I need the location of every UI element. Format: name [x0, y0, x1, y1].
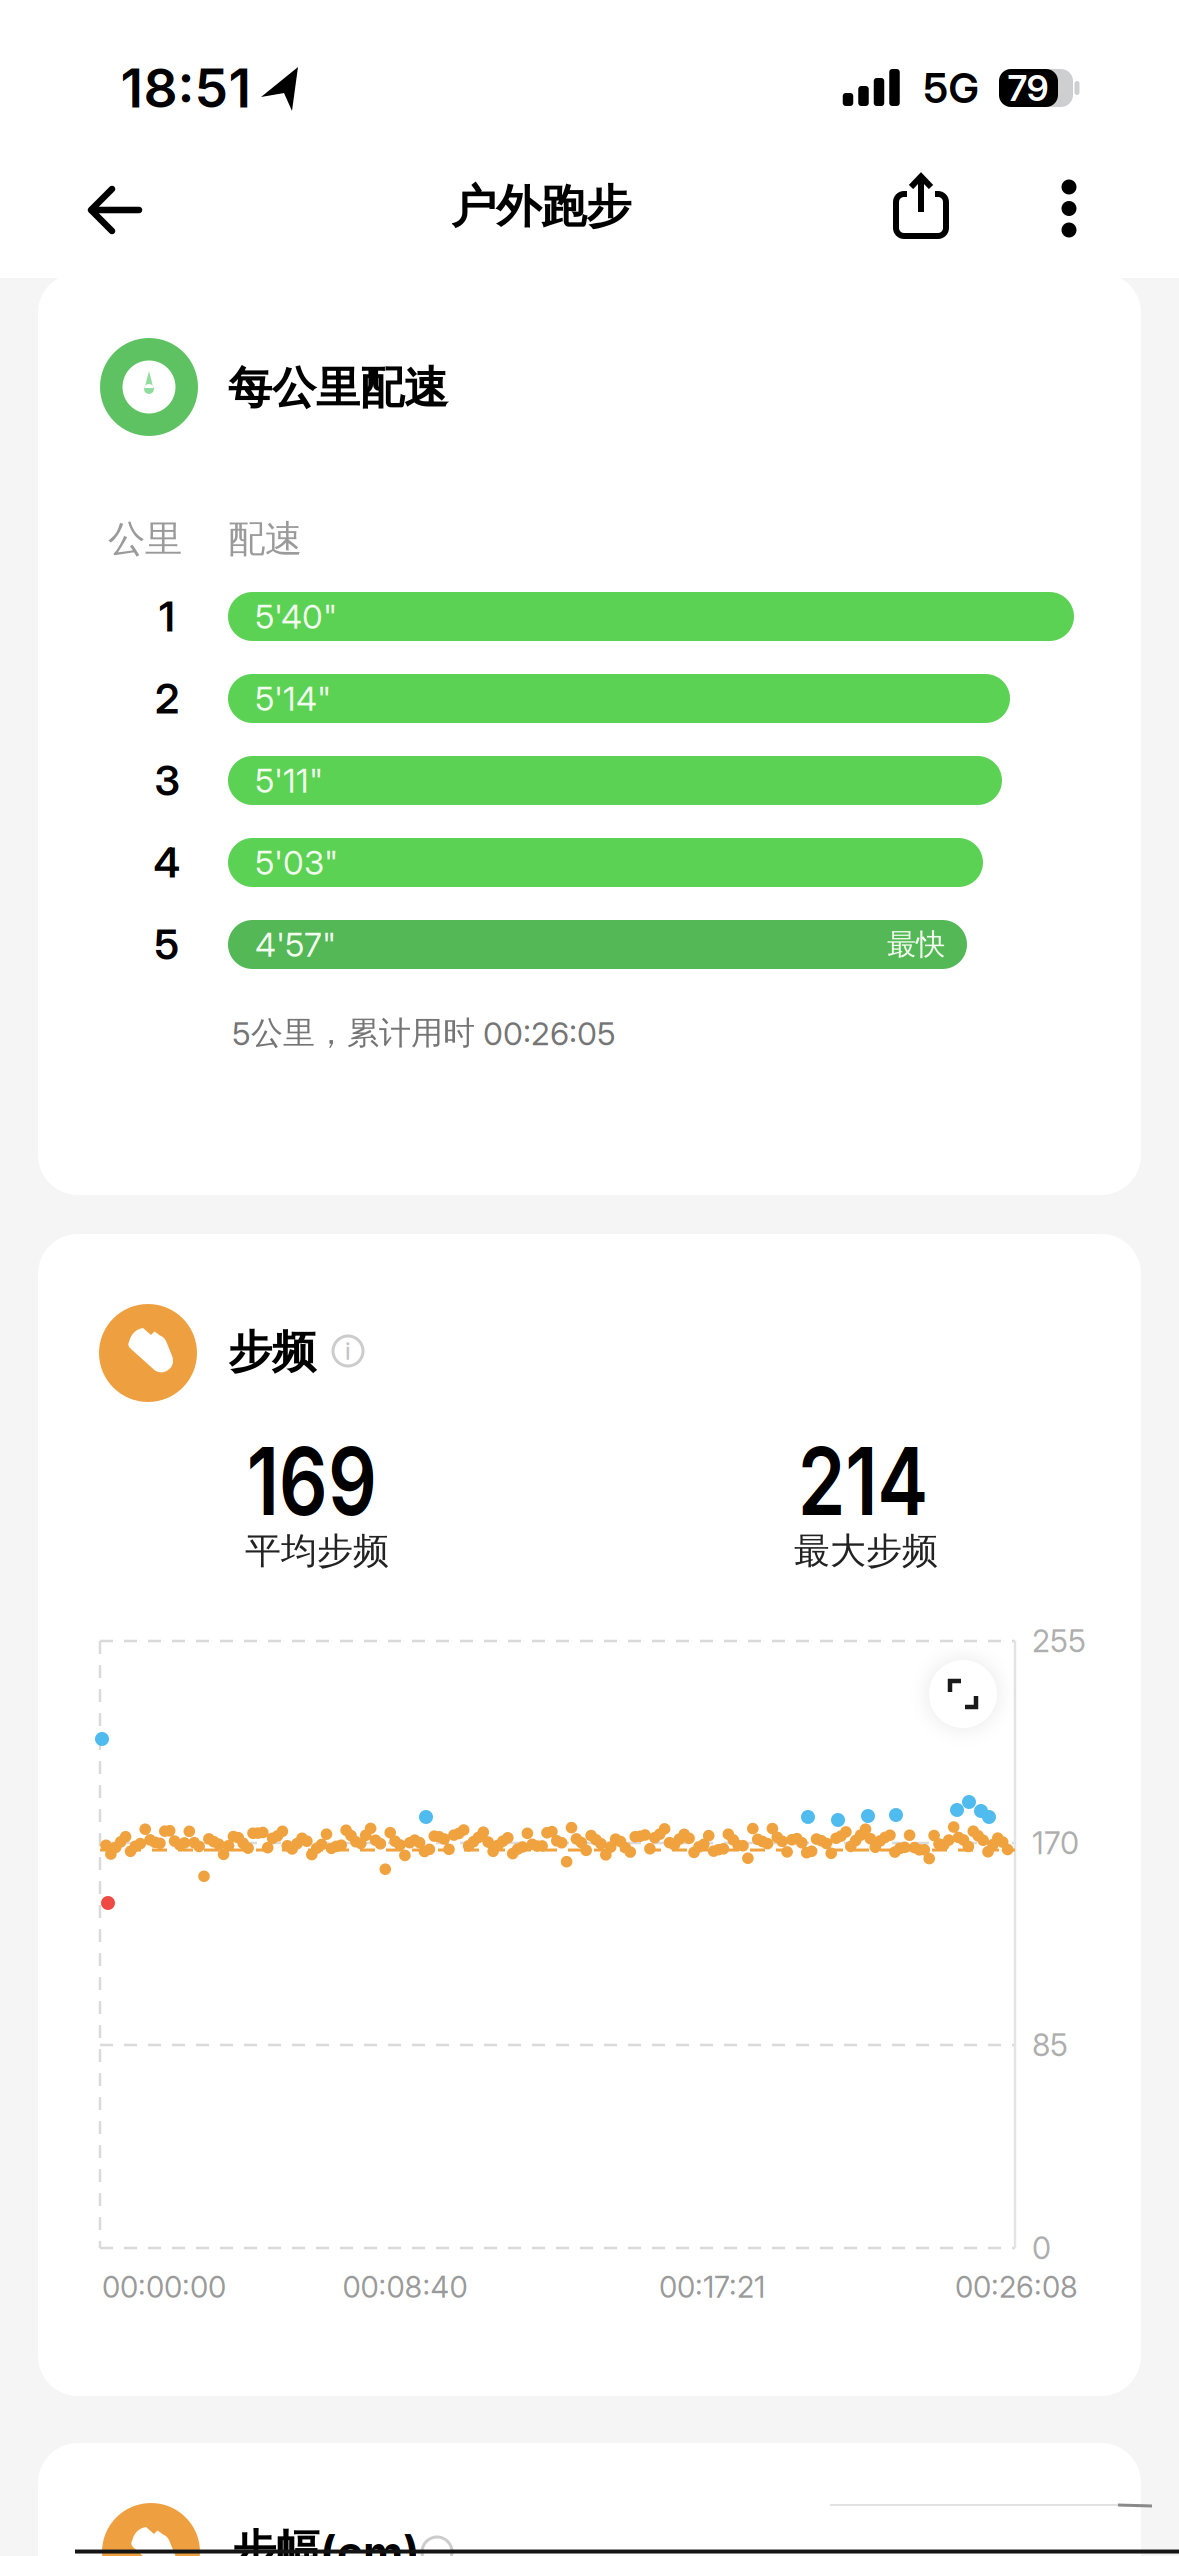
staticText: 公里 [108, 516, 182, 562]
staticText: 4 [153, 838, 180, 887]
staticText: 5'14" [255, 679, 331, 718]
staticText: 最快 [887, 926, 945, 962]
staticText: i [345, 1338, 351, 1365]
staticText: 18:51 [120, 56, 251, 119]
button[interactable] [929, 1660, 997, 1728]
staticText: 2 [155, 674, 179, 723]
staticText: 5'11" [255, 761, 323, 800]
staticText: 5'40" [255, 597, 337, 636]
staticText: 00:08:40 [342, 2270, 467, 2304]
staticText: 00:17:21 [659, 2270, 765, 2304]
staticText: 平均步频 [245, 1529, 389, 1573]
staticText: 3 [154, 756, 179, 805]
staticText: 0 [1032, 2230, 1051, 2266]
staticText: 每公里配速 [228, 361, 448, 415]
staticText: 4'57" [255, 925, 336, 964]
staticText: 5公里，累计用时 00:26:05 [232, 1013, 616, 1053]
staticText: 214 [783, 1426, 942, 1536]
staticText: 步幅(cm) [232, 2524, 420, 2556]
staticText: 00:26:08 [955, 2270, 1078, 2304]
staticText: 85 [1032, 2027, 1068, 2063]
staticText: 169 [232, 1426, 391, 1536]
staticText: 最大步频 [794, 1529, 938, 1573]
staticText: 步频 [228, 1325, 316, 1379]
staticText: 5'03" [255, 843, 338, 882]
button[interactable] [0, 0, 1179, 2556]
staticText: 00:00:00 [102, 2270, 226, 2304]
staticText: 配速 [228, 516, 302, 562]
staticText: 5 [154, 920, 179, 969]
staticText: 170 [1032, 1825, 1079, 1861]
button[interactable] [0, 0, 1179, 2556]
staticText: 5G [923, 64, 978, 112]
staticText: 79 [1007, 67, 1048, 109]
button[interactable]: i [328, 1331, 368, 1371]
button[interactable] [0, 0, 1179, 2556]
staticText: 1 [159, 592, 175, 641]
staticText: 255 [1032, 1623, 1086, 1659]
staticText: 户外跑步 [451, 179, 631, 235]
